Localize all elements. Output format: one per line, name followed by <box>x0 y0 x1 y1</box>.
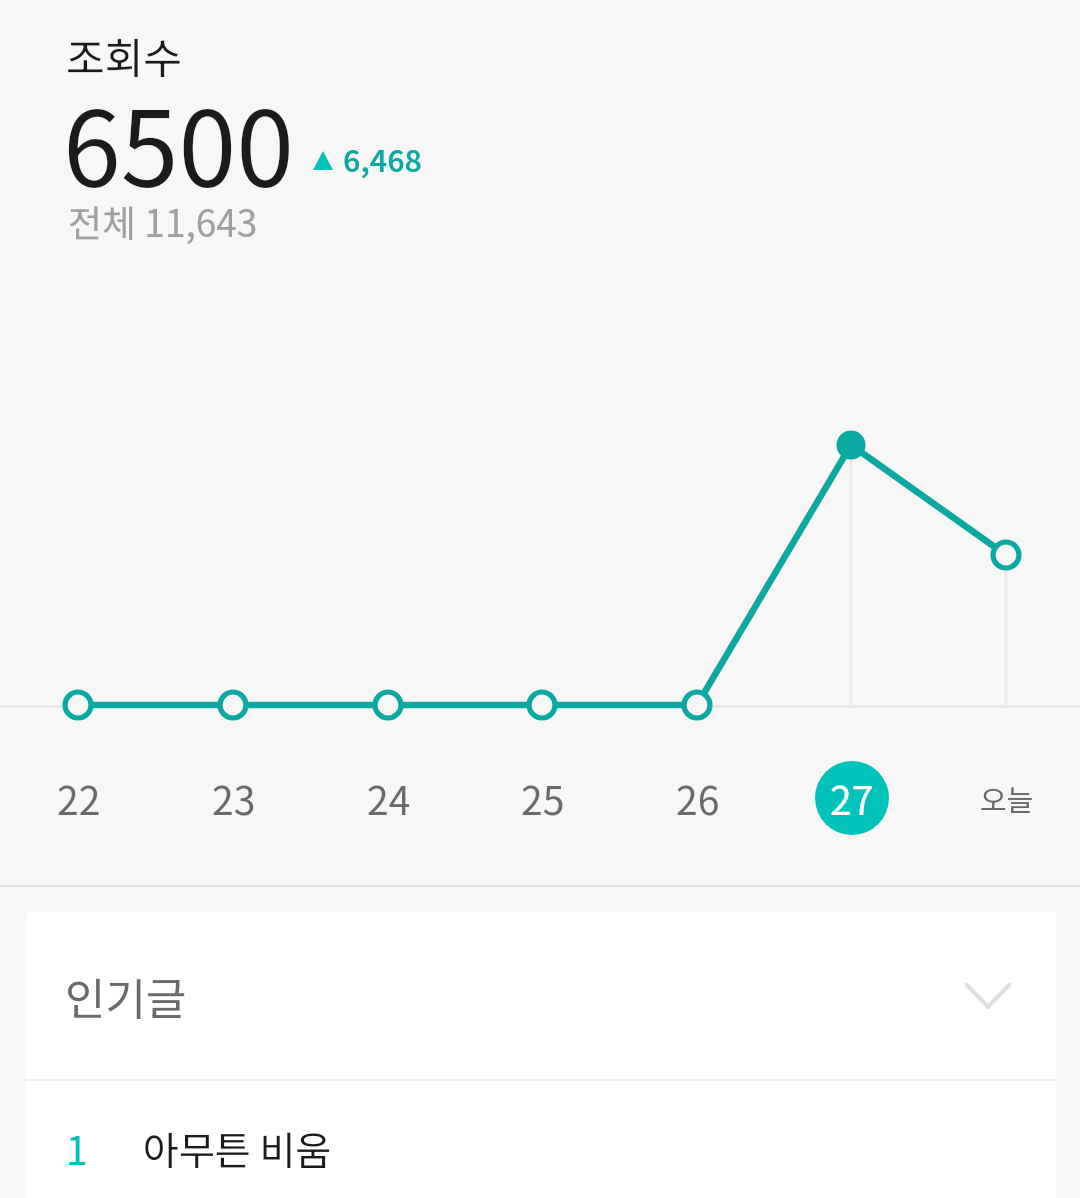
staticText: 1 <box>66 1120 88 1176</box>
button[interactable]: 오늘 <box>962 753 1052 843</box>
button[interactable]: 인기글 <box>26 912 1056 1079</box>
staticText: 6500 <box>63 66 294 217</box>
staticText: 오늘 <box>980 777 1034 819</box>
button[interactable]: 25 <box>498 753 588 843</box>
staticText: 아무튼 비움 <box>143 1120 332 1176</box>
button[interactable]: 22 <box>34 753 124 843</box>
button[interactable]: 27 <box>807 753 897 843</box>
staticText: 23 <box>212 770 256 826</box>
button[interactable]: 1 <box>26 1081 1056 1198</box>
staticText: 조회수 <box>66 25 182 86</box>
button[interactable]: 23 <box>189 753 279 843</box>
staticText: 24 <box>367 770 411 826</box>
staticText: 26 <box>676 770 720 826</box>
button[interactable]: 조회수 <box>40 14 560 254</box>
button[interactable]: 24 <box>344 753 434 843</box>
staticText: 25 <box>521 770 565 826</box>
staticText: 전체 11,643 <box>68 194 258 248</box>
staticText: 인기글 <box>65 964 187 1028</box>
other: Collapse popular posts <box>962 970 1014 1022</box>
staticText: 22 <box>57 770 101 826</box>
staticText: 27 <box>830 770 874 826</box>
staticText: 6,468 <box>343 137 422 180</box>
button[interactable]: 26 <box>653 753 743 843</box>
